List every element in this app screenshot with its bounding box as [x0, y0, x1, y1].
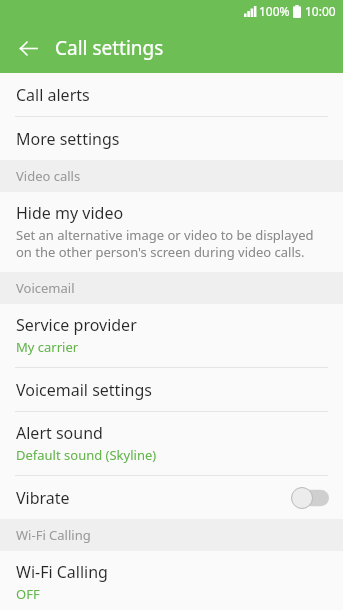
staticText: Wi-Fi Calling — [16, 561, 108, 583]
button[interactable]: Back — [10, 30, 46, 66]
button[interactable]: Call alerts — [0, 73, 343, 116]
other: Vibrate toggle — [291, 487, 329, 509]
staticText: Voicemail — [16, 279, 75, 297]
button[interactable]: Hide my video — [0, 192, 343, 272]
staticText: Default sound (Skyline) — [16, 446, 157, 464]
staticText: Service provider — [16, 314, 137, 336]
staticText: Video calls — [16, 167, 81, 185]
button[interactable]: Voicemail settings — [0, 368, 343, 411]
staticText: 10:00 — [305, 3, 336, 19]
button[interactable]: More settings — [0, 117, 343, 160]
staticText: 100% — [259, 3, 290, 19]
staticText: Call alerts — [16, 84, 90, 106]
staticText: Hide my video — [16, 202, 124, 224]
button[interactable]: Vibrate — [0, 476, 343, 519]
staticText: Vibrate — [16, 487, 70, 509]
staticText: OFF — [16, 585, 40, 599]
staticText: Call settings — [55, 35, 164, 61]
staticText: Voicemail settings — [16, 379, 152, 401]
staticText: My carrier — [16, 338, 79, 356]
staticText: Wi-Fi Calling — [16, 526, 91, 544]
button[interactable]: Alert sound — [0, 412, 343, 475]
button[interactable]: Wi-Fi Calling — [0, 551, 343, 610]
staticText: More settings — [16, 128, 120, 150]
staticText: Alert sound — [16, 422, 103, 444]
button[interactable]: Service provider — [0, 304, 343, 367]
staticText: Set an alternative image or video to be … — [16, 226, 314, 261]
